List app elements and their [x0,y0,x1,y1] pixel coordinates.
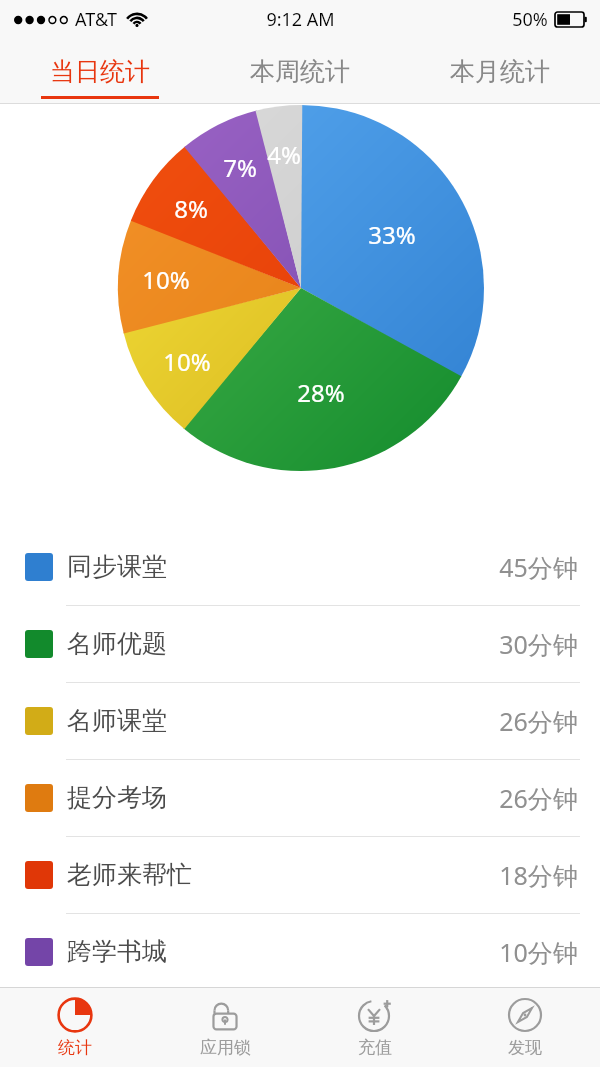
staticText: AT&T [75,7,117,32]
staticText: 30分钟 [499,627,578,661]
staticText: 9:12 AM [266,7,335,32]
staticText: 10% [163,345,211,378]
staticText: 28% [297,376,345,409]
staticText: 名师课堂 [67,705,167,736]
staticText: 本周统计 [250,56,350,87]
button[interactable]: 老师来帮忙 [0,836,600,913]
button[interactable]: 提分考场 [0,759,600,836]
button[interactable]: 发现 [450,988,600,1067]
button[interactable]: 应用锁 [150,988,300,1067]
staticText: 跨学书城 [67,936,167,967]
staticText: 26分钟 [499,781,578,815]
staticText: 统计 [58,1037,92,1058]
staticText: 26分钟 [499,704,578,738]
staticText: 7% [223,151,257,184]
staticText: 应用锁 [200,1037,251,1058]
button[interactable]: 当日统计 [0,38,200,104]
staticText: 33% [368,218,416,251]
button[interactable]: 本月统计 [400,38,600,104]
staticText: 18分钟 [499,858,578,892]
button[interactable]: 充值 [300,988,450,1067]
button[interactable]: 统计 [0,988,150,1067]
staticText: 50% [512,7,548,32]
button[interactable]: 跨学书城 [0,913,600,990]
button[interactable]: 名师课堂 [0,682,600,759]
staticText: 8% [174,192,208,225]
button[interactable]: 名师优题 [0,605,600,682]
staticText: 充值 [358,1037,392,1058]
staticText: 4% [267,138,301,171]
staticText: 提分考场 [67,782,167,813]
button[interactable]: 本周统计 [200,38,400,104]
button[interactable]: 同步课堂 [0,528,600,605]
staticText: 老师来帮忙 [67,859,192,890]
staticText: 发现 [508,1037,542,1058]
staticText: 45分钟 [499,550,578,584]
staticText: 10% [142,263,190,296]
staticText: 名师优题 [67,628,167,659]
staticText: 本月统计 [450,56,550,87]
staticText: 10分钟 [499,935,578,969]
staticText: 当日统计 [50,56,150,87]
staticText: 同步课堂 [67,551,167,582]
